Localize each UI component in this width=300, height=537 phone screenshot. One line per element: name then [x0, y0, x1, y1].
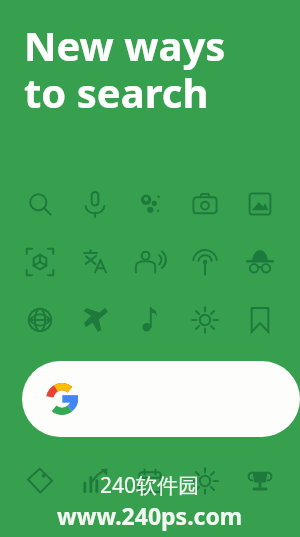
button[interactable]: Camera [183, 182, 227, 226]
staticText: www.240ps.com [57, 500, 243, 531]
button[interactable]: Voice [128, 240, 172, 284]
button[interactable]: Sports [238, 459, 282, 503]
button[interactable]: Saved [238, 298, 282, 342]
button[interactable]: Awards [183, 459, 227, 503]
button[interactable]: Nearby [183, 240, 227, 284]
button[interactable]: Images [238, 182, 282, 226]
button[interactable]: Web [18, 298, 62, 342]
button[interactable]: Calendar [128, 459, 172, 503]
button[interactable]: Weather [183, 298, 227, 342]
button[interactable]: Search [18, 182, 62, 226]
button[interactable]: Shopping [18, 459, 62, 503]
button[interactable]: 3D view [18, 240, 62, 284]
button[interactable]: Incognito [238, 240, 282, 284]
button[interactable]: Flights [73, 298, 117, 342]
button[interactable]: Google Lens [128, 182, 172, 226]
button[interactable]: Trending [73, 459, 117, 503]
staticText: New ways to search [24, 18, 226, 120]
staticText: 240软件园 [100, 471, 200, 500]
button[interactable]: Music search [128, 298, 172, 342]
button[interactable]: Search with Google [22, 361, 300, 437]
button[interactable]: Voice search [73, 182, 117, 226]
button[interactable]: Translate [73, 240, 117, 284]
